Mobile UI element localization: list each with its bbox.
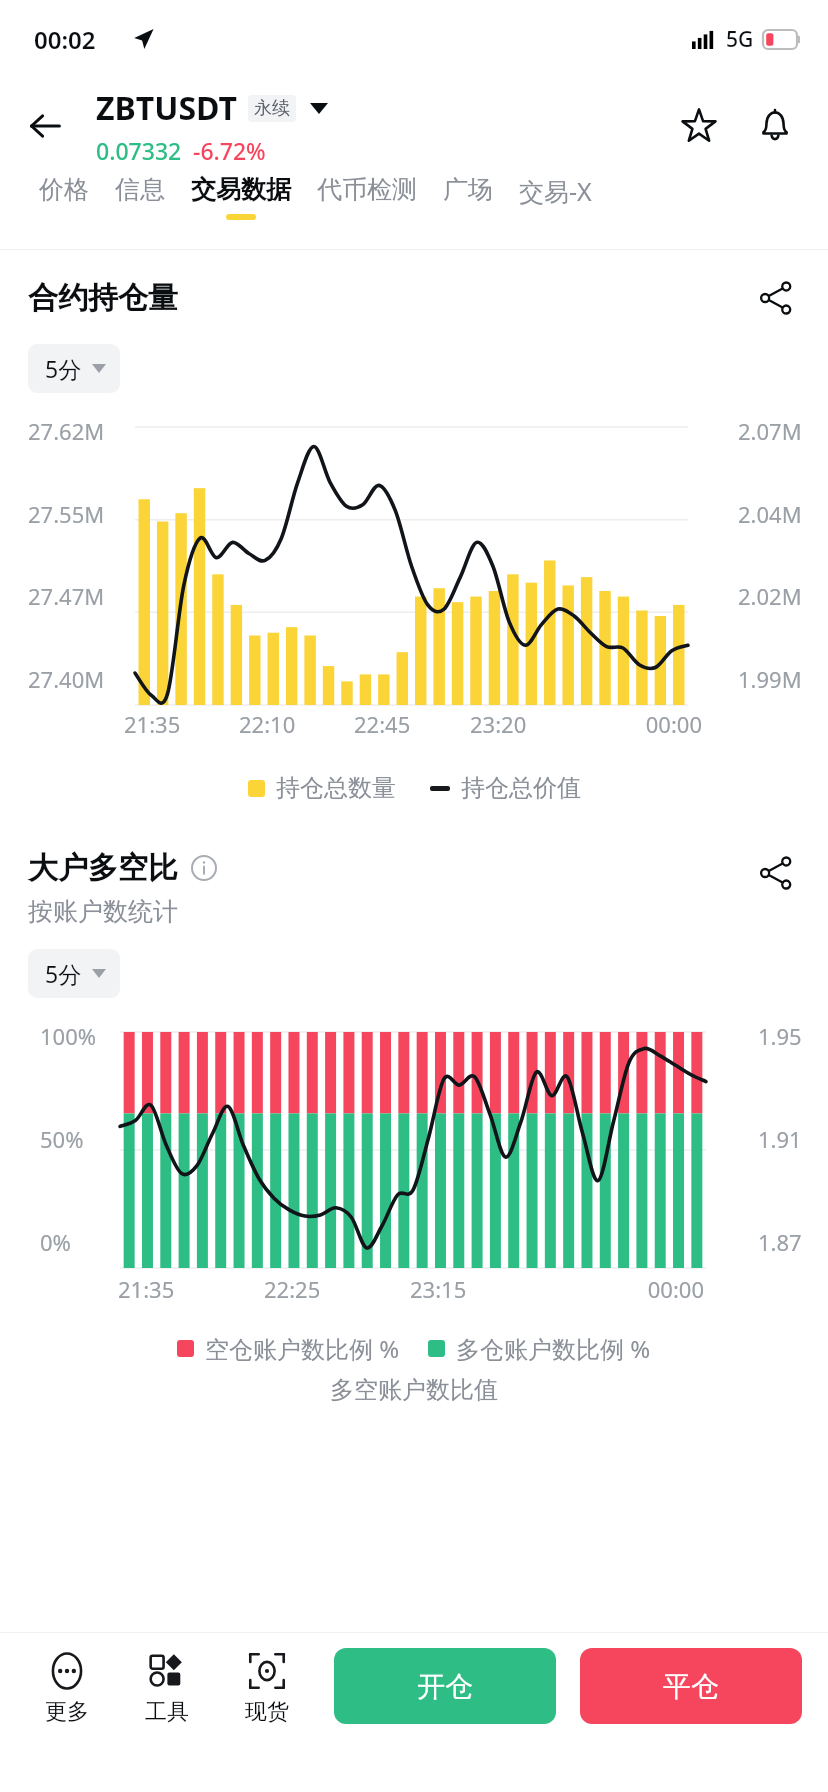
button[interactable]: Share xyxy=(752,274,800,322)
button[interactable]: 工具 xyxy=(130,1648,204,1726)
staticText: 代币检测 xyxy=(317,174,417,205)
button[interactable]: Favorite xyxy=(668,95,730,157)
button[interactable]: 交易-X xyxy=(506,174,605,217)
staticText: 0% xyxy=(40,1227,71,1257)
staticText: 22:25 xyxy=(264,1274,410,1304)
staticText: 23:15 xyxy=(410,1274,557,1304)
staticText: 21:35 xyxy=(118,1274,264,1304)
staticText: 1.95 xyxy=(758,1021,802,1051)
button[interactable]: Info xyxy=(189,853,219,883)
button[interactable]: 代币检测 xyxy=(304,174,430,214)
button[interactable]: Notifications xyxy=(744,95,806,157)
staticText: 按账户数统计 xyxy=(28,896,178,927)
staticText: -6.72% xyxy=(193,135,266,166)
staticText: 00:02 xyxy=(34,23,96,56)
button[interactable]: Back xyxy=(14,95,76,157)
staticText: 2.04M xyxy=(738,499,802,529)
button[interactable]: Share xyxy=(752,849,800,897)
staticText: 22:10 xyxy=(239,709,354,739)
staticText: 50% xyxy=(40,1124,84,1154)
staticText: 广场 xyxy=(443,174,493,205)
staticText: 永续 xyxy=(254,97,290,120)
staticText: 信息 xyxy=(115,174,165,205)
staticText: 持仓总数量 xyxy=(276,773,396,803)
staticText: 多仓账户数比例 % xyxy=(456,1332,651,1365)
staticText: 5分 xyxy=(45,958,82,989)
staticText: 23:20 xyxy=(470,709,586,739)
button[interactable]: 5分 xyxy=(28,949,120,998)
staticText: 交易数据 xyxy=(191,174,291,205)
staticText: 多空账户数比值 xyxy=(0,1375,828,1405)
staticText: 22:45 xyxy=(354,709,470,739)
button[interactable]: 5分 xyxy=(28,344,120,393)
staticText: 更多 xyxy=(45,1698,89,1726)
staticText: 开仓 xyxy=(417,1669,473,1704)
button[interactable]: 平仓 xyxy=(580,1648,802,1724)
staticText: 5分 xyxy=(45,353,82,384)
staticText: 5G xyxy=(726,25,754,54)
staticText: 持仓总价值 xyxy=(461,773,581,803)
button[interactable]: 开仓 xyxy=(334,1648,556,1724)
staticText: 27.55M xyxy=(28,499,105,529)
staticText: 100% xyxy=(40,1021,97,1051)
button[interactable]: 更多 xyxy=(30,1648,104,1726)
staticText: 27.62M xyxy=(28,416,105,446)
staticText: 1.87 xyxy=(758,1227,802,1257)
staticText: 0.07332 xyxy=(96,135,182,166)
button[interactable]: 信息 xyxy=(102,174,178,214)
staticText: 1.91 xyxy=(758,1124,802,1154)
staticText: ZBTUSDT xyxy=(96,86,238,130)
staticText: 21:35 xyxy=(124,709,239,739)
staticText: 2.02M xyxy=(738,581,802,611)
staticText: 2.07M xyxy=(738,416,802,446)
staticText: 交易-X xyxy=(519,174,592,208)
button[interactable]: 现货 xyxy=(230,1648,304,1726)
staticText: 大户多空比 xyxy=(28,849,178,887)
staticText: 工具 xyxy=(145,1698,189,1726)
staticText: 价格 xyxy=(39,174,89,205)
staticText: 27.40M xyxy=(28,664,105,694)
staticText: 平仓 xyxy=(663,1669,719,1704)
button[interactable]: 交易数据 xyxy=(178,174,304,220)
staticText: 空仓账户数比例 % xyxy=(205,1332,400,1365)
staticText: 27.47M xyxy=(28,581,105,611)
staticText: 00:00 xyxy=(586,709,702,739)
button[interactable]: 广场 xyxy=(430,174,506,214)
button[interactable]: 价格 xyxy=(26,174,102,214)
staticText: 现货 xyxy=(245,1698,289,1726)
staticText: 00:00 xyxy=(557,1274,704,1304)
staticText: 合约持仓量 xyxy=(28,279,178,317)
button[interactable]: Select contract xyxy=(306,95,332,121)
staticText: 1.99M xyxy=(738,664,802,694)
